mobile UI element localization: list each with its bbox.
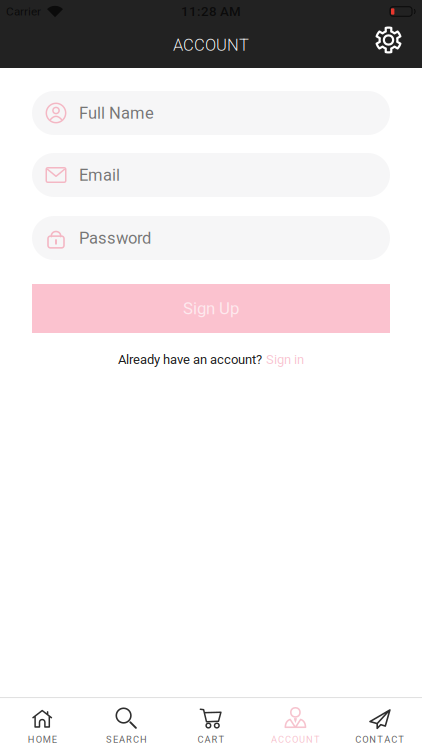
button[interactable]: H O M E bbox=[0, 707, 84, 745]
staticText: H O M E bbox=[28, 734, 57, 745]
staticText: Password bbox=[79, 228, 151, 248]
staticText: Sign in bbox=[266, 352, 304, 367]
button[interactable]: C O N T A C T bbox=[338, 707, 422, 745]
button[interactable]: Email bbox=[32, 153, 390, 197]
staticText: Already have an account? bbox=[118, 352, 262, 367]
button[interactable]: Full Name bbox=[32, 91, 390, 135]
button[interactable]: C A R T bbox=[169, 707, 253, 745]
staticText: Email bbox=[79, 165, 120, 185]
staticText: ACCOUNT bbox=[173, 35, 249, 55]
button[interactable]: A C C O U N T bbox=[253, 707, 338, 745]
staticText: 11:28 AM bbox=[181, 4, 241, 19]
staticText: Carrier bbox=[6, 5, 41, 18]
staticText: C O N T A C T bbox=[355, 734, 404, 745]
button[interactable]: Sign in bbox=[266, 352, 304, 367]
staticText: Sign Up bbox=[183, 299, 239, 318]
staticText: A C C O U N T bbox=[271, 734, 320, 745]
button[interactable]: Password bbox=[32, 216, 390, 260]
staticText: Full Name bbox=[79, 103, 154, 123]
button[interactable]: S E A R C H bbox=[84, 707, 169, 745]
staticText: C A R T bbox=[197, 734, 224, 745]
button[interactable]: Sign Up bbox=[32, 284, 390, 333]
button[interactable]: Settings bbox=[374, 25, 422, 54]
staticText: S E A R C H bbox=[106, 734, 147, 745]
